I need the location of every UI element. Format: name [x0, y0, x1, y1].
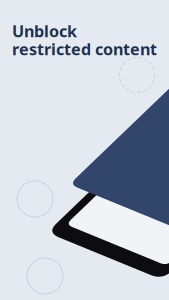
staticText: restricted content	[12, 38, 157, 60]
staticText: Unblock	[12, 20, 77, 42]
